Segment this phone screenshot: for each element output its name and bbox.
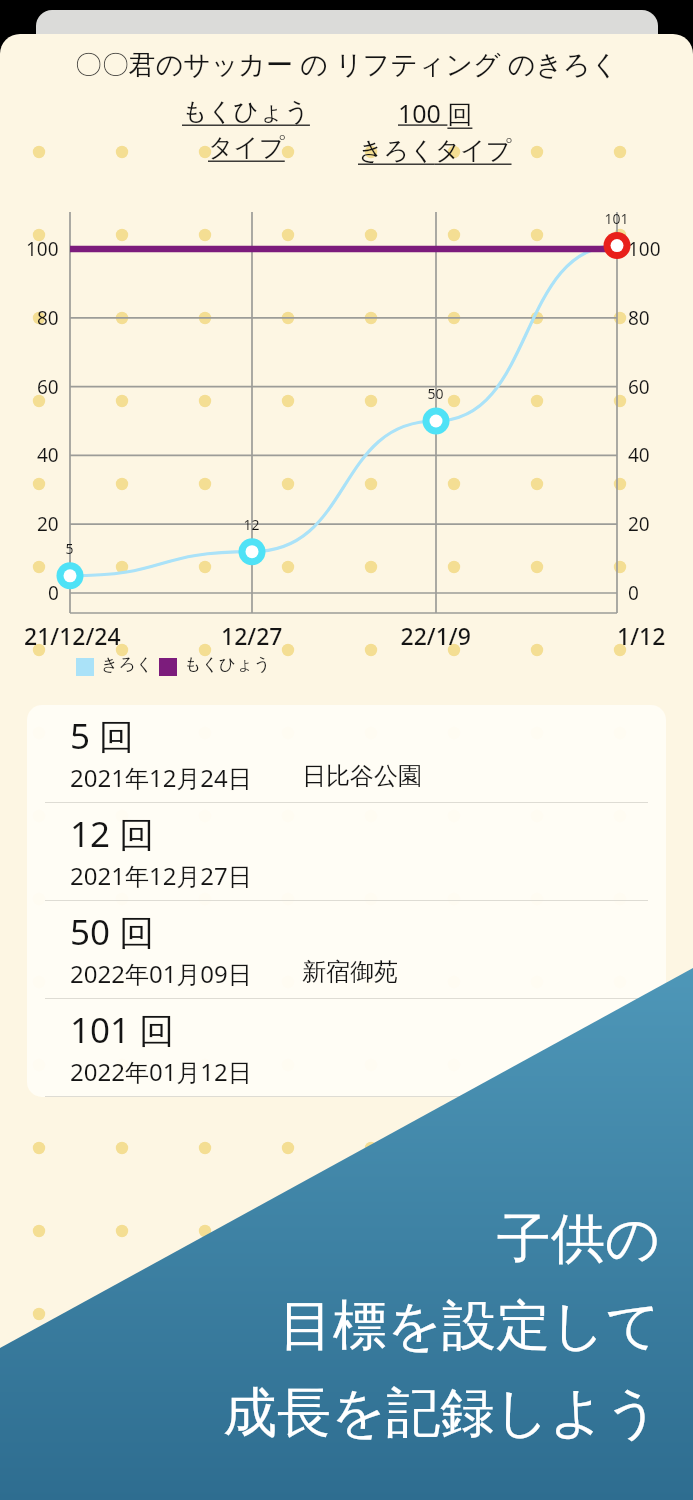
button[interactable]: 12 回 [27,803,666,901]
staticText: 日比谷公園 [302,761,422,791]
staticText: 100 回 [398,96,473,130]
staticText: 2021年12月27日 [70,859,252,892]
staticText: 12 回 [70,810,155,858]
staticText: 2022年01月09日 [70,957,252,990]
button[interactable]: 5 回 [27,705,666,803]
staticText: 5 回 [70,712,135,760]
button[interactable]: 101 回 [27,999,666,1097]
staticText: きろくタイプ [358,135,512,166]
button[interactable]: 50 回 [27,901,666,999]
staticText: 2021年12月24日 [70,761,252,794]
staticText: 〇〇君のサッカー の リフティング のきろく [12,45,681,82]
button[interactable]: 100 回 [358,96,512,166]
staticText: 101 回 [70,1006,175,1054]
staticText: 2022年01月12日 [70,1055,252,1088]
staticText: 新宿御苑 [302,957,398,987]
button[interactable]: もくひょう [182,96,310,163]
staticText: もくひょう [182,96,310,127]
staticText: タイプ [208,132,285,163]
staticText: 50 回 [70,908,155,956]
